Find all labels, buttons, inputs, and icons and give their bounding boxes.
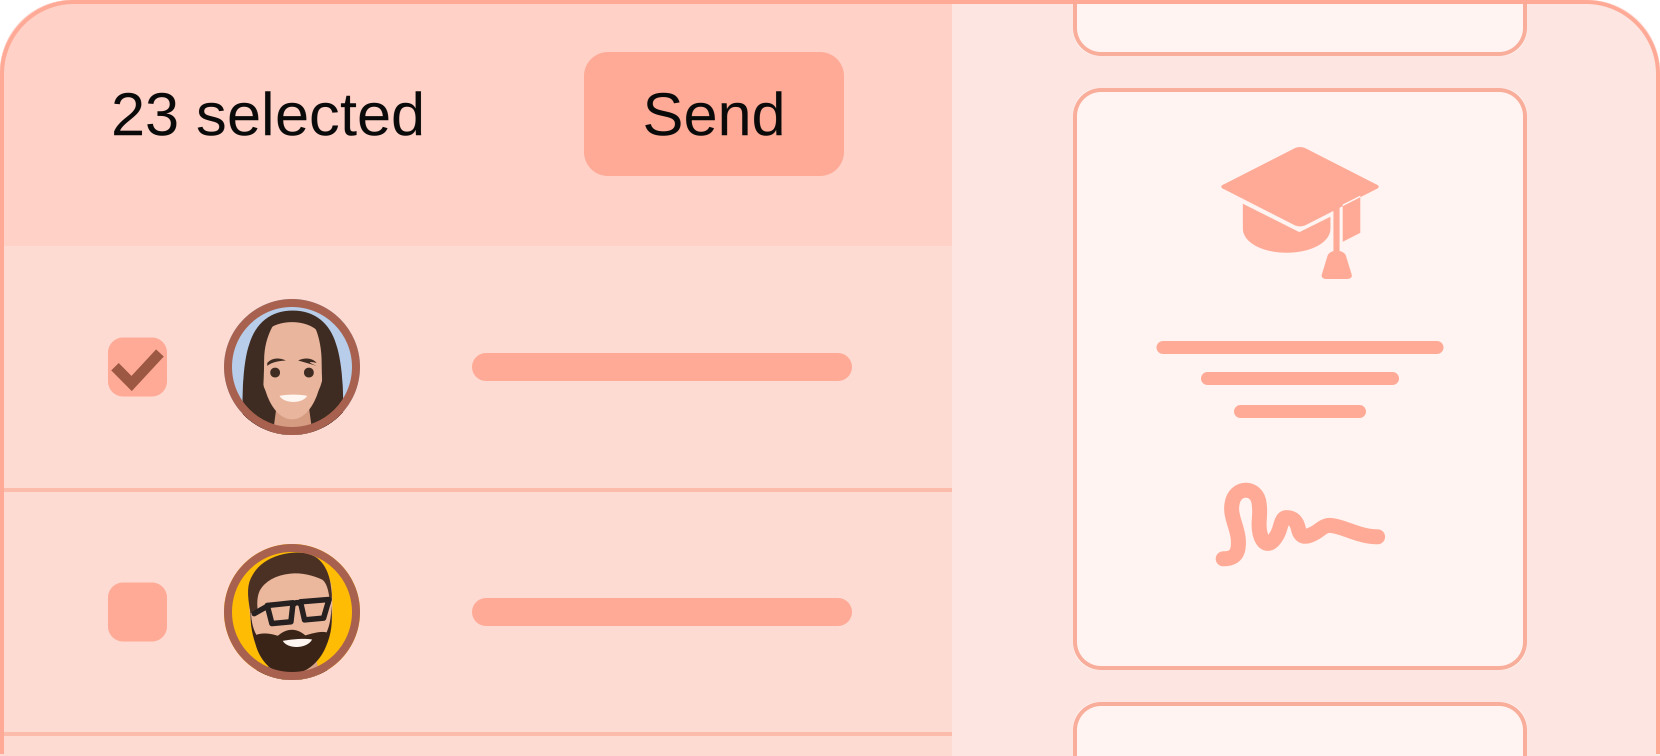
button[interactable]: Contact 2 bbox=[0, 492, 952, 732]
button[interactable]: Certificate bbox=[1073, 0, 1527, 56]
button[interactable]: Certificate bbox=[1073, 88, 1527, 670]
button[interactable]: Certificate bbox=[1073, 702, 1527, 756]
button[interactable]: Send bbox=[584, 52, 844, 176]
button[interactable]: Contact 1, selected bbox=[0, 246, 952, 488]
staticText: Send bbox=[642, 80, 785, 148]
staticText: 23 selected bbox=[111, 80, 425, 148]
